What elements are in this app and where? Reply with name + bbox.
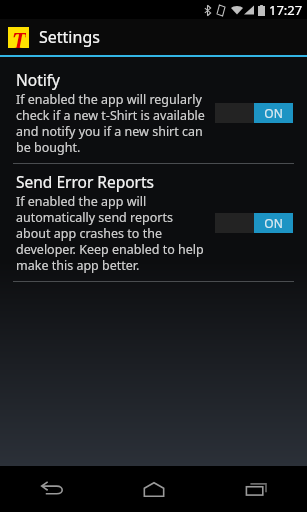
staticText: ON [264, 215, 283, 231]
button[interactable]: Back [0, 466, 103, 512]
button[interactable]: Home [103, 466, 205, 512]
staticText: Settings [39, 26, 100, 48]
button[interactable]: Recent apps [205, 466, 307, 512]
staticText: If enabled the app will regularly check … [16, 91, 209, 156]
staticText: If enabled the app will automatically se… [16, 193, 209, 274]
button[interactable]: Notify [0, 62, 307, 163]
staticText: ON [264, 105, 283, 121]
staticText: 17:27 [269, 1, 303, 19]
button[interactable]: Toggle setting, on [215, 103, 293, 123]
button[interactable]: Toggle setting, on [215, 213, 293, 233]
staticText: T [12, 27, 26, 48]
staticText: Notify [16, 69, 60, 90]
staticText: Send Error Reports [16, 171, 155, 192]
button[interactable]: Send Error Reports [0, 164, 307, 281]
